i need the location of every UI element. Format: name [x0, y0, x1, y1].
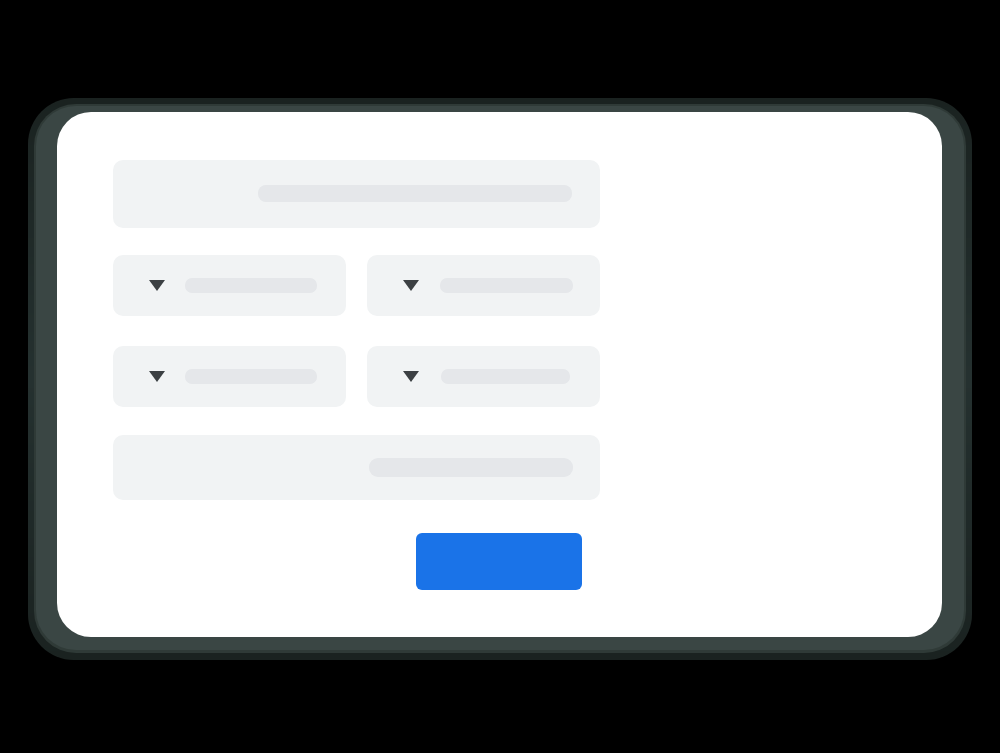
button[interactable]: Text field — [113, 435, 600, 500]
button[interactable]: Dropdown — [113, 255, 346, 316]
button[interactable]: Text field — [113, 160, 600, 228]
button[interactable]: Dropdown — [113, 346, 346, 407]
button[interactable]: Dropdown — [367, 255, 600, 316]
button[interactable]: Dropdown — [367, 346, 600, 407]
button[interactable]: Submit — [416, 533, 582, 590]
